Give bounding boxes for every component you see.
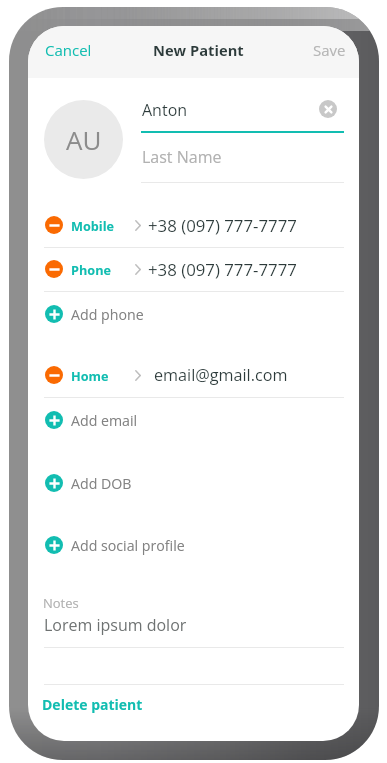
staticText: Add phone xyxy=(71,305,144,324)
button[interactable]: Add photo xyxy=(44,100,123,179)
staticText: New Patient xyxy=(153,40,244,60)
staticText: Notes xyxy=(43,594,79,612)
button[interactable]: Home xyxy=(45,360,345,390)
staticText: email@gmail.com xyxy=(154,364,288,386)
staticText: Anton xyxy=(142,99,188,121)
button[interactable]: Delete patient xyxy=(36,689,149,720)
staticText: Phone xyxy=(71,261,111,278)
staticText: Add email xyxy=(71,411,138,430)
button[interactable]: Add social profile xyxy=(45,530,345,560)
staticText: Cancel xyxy=(45,40,92,60)
staticText: Last Name xyxy=(142,146,222,168)
staticText: +38 (097) 777-7777 xyxy=(148,214,297,237)
staticText: Add DOB xyxy=(71,474,132,493)
staticText: AU xyxy=(66,122,102,157)
staticText: +38 (097) 777-7777 xyxy=(148,258,297,281)
button[interactable]: Add email xyxy=(45,405,345,435)
button[interactable]: Phone xyxy=(45,254,345,284)
button[interactable]: Mobile xyxy=(45,210,345,240)
staticText: Delete patient xyxy=(42,695,143,714)
staticText: Lorem ipsum dolor xyxy=(44,614,187,636)
button[interactable]: Clear first name xyxy=(319,100,337,118)
staticText: Add social profile xyxy=(71,536,185,555)
staticText: Save xyxy=(313,40,346,60)
staticText: Mobile xyxy=(71,217,115,234)
button[interactable]: Add phone xyxy=(45,299,345,329)
button[interactable]: Cancel xyxy=(39,33,98,67)
button[interactable]: Save xyxy=(307,33,352,67)
staticText: Home xyxy=(71,367,109,384)
button[interactable]: Add DOB xyxy=(45,468,345,498)
